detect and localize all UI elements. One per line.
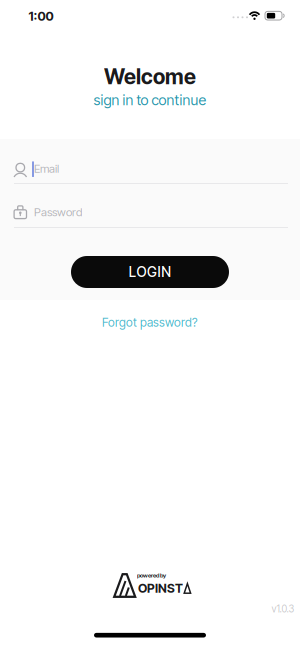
button[interactable]: LOGIN (71, 256, 229, 288)
staticText: Forgot password? (102, 315, 198, 330)
staticText: OPINST (138, 581, 183, 596)
staticText: Welcome (104, 64, 196, 89)
staticText: sign in to continue (93, 91, 206, 109)
staticText: LOGIN (129, 264, 171, 280)
staticText: Email (34, 162, 59, 175)
staticText: powered by (137, 572, 166, 579)
staticText: Password (34, 205, 82, 219)
button[interactable]: Email (0, 144, 300, 188)
button[interactable]: Forgot password? (102, 315, 198, 330)
staticText: v1.0.3 (271, 603, 294, 615)
staticText: 1:00 (28, 9, 53, 24)
button[interactable]: Password (0, 187, 300, 231)
